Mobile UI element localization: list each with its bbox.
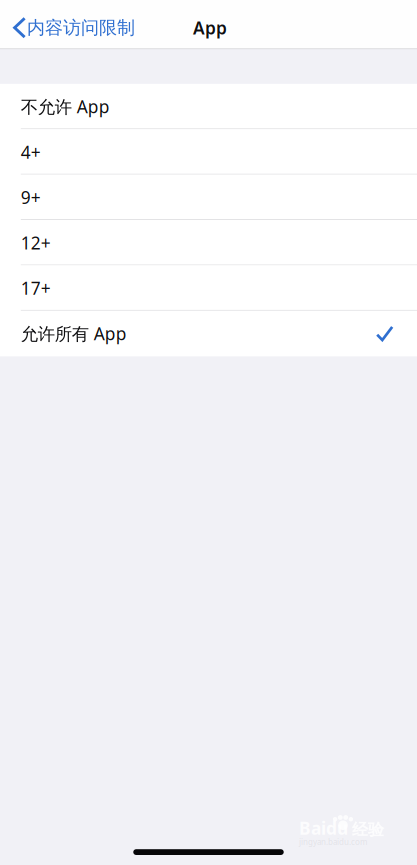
button[interactable]: 17+ [0, 265, 417, 311]
button[interactable]: 允许所有 App [0, 311, 417, 356]
staticText: 经验 [352, 820, 384, 840]
button[interactable]: 4+ [0, 129, 417, 175]
staticText: 17+ [21, 277, 51, 300]
button[interactable]: 12+ [0, 220, 417, 265]
staticText: 不允许 App [21, 95, 110, 118]
button[interactable]: 内容访问限制 [0, 10, 143, 45]
staticText: 允许所有 App [21, 322, 127, 345]
button[interactable]: 9+ [0, 175, 417, 220]
staticText: 内容访问限制 [27, 16, 135, 39]
button[interactable]: 不允许 App [0, 84, 417, 129]
staticText: Baidu [299, 816, 348, 839]
staticText: 9+ [21, 186, 41, 209]
staticText: 4+ [21, 140, 41, 163]
staticText: 12+ [21, 231, 51, 254]
staticText: jingyan.baidu.com [299, 837, 367, 847]
staticText: App [193, 16, 227, 39]
